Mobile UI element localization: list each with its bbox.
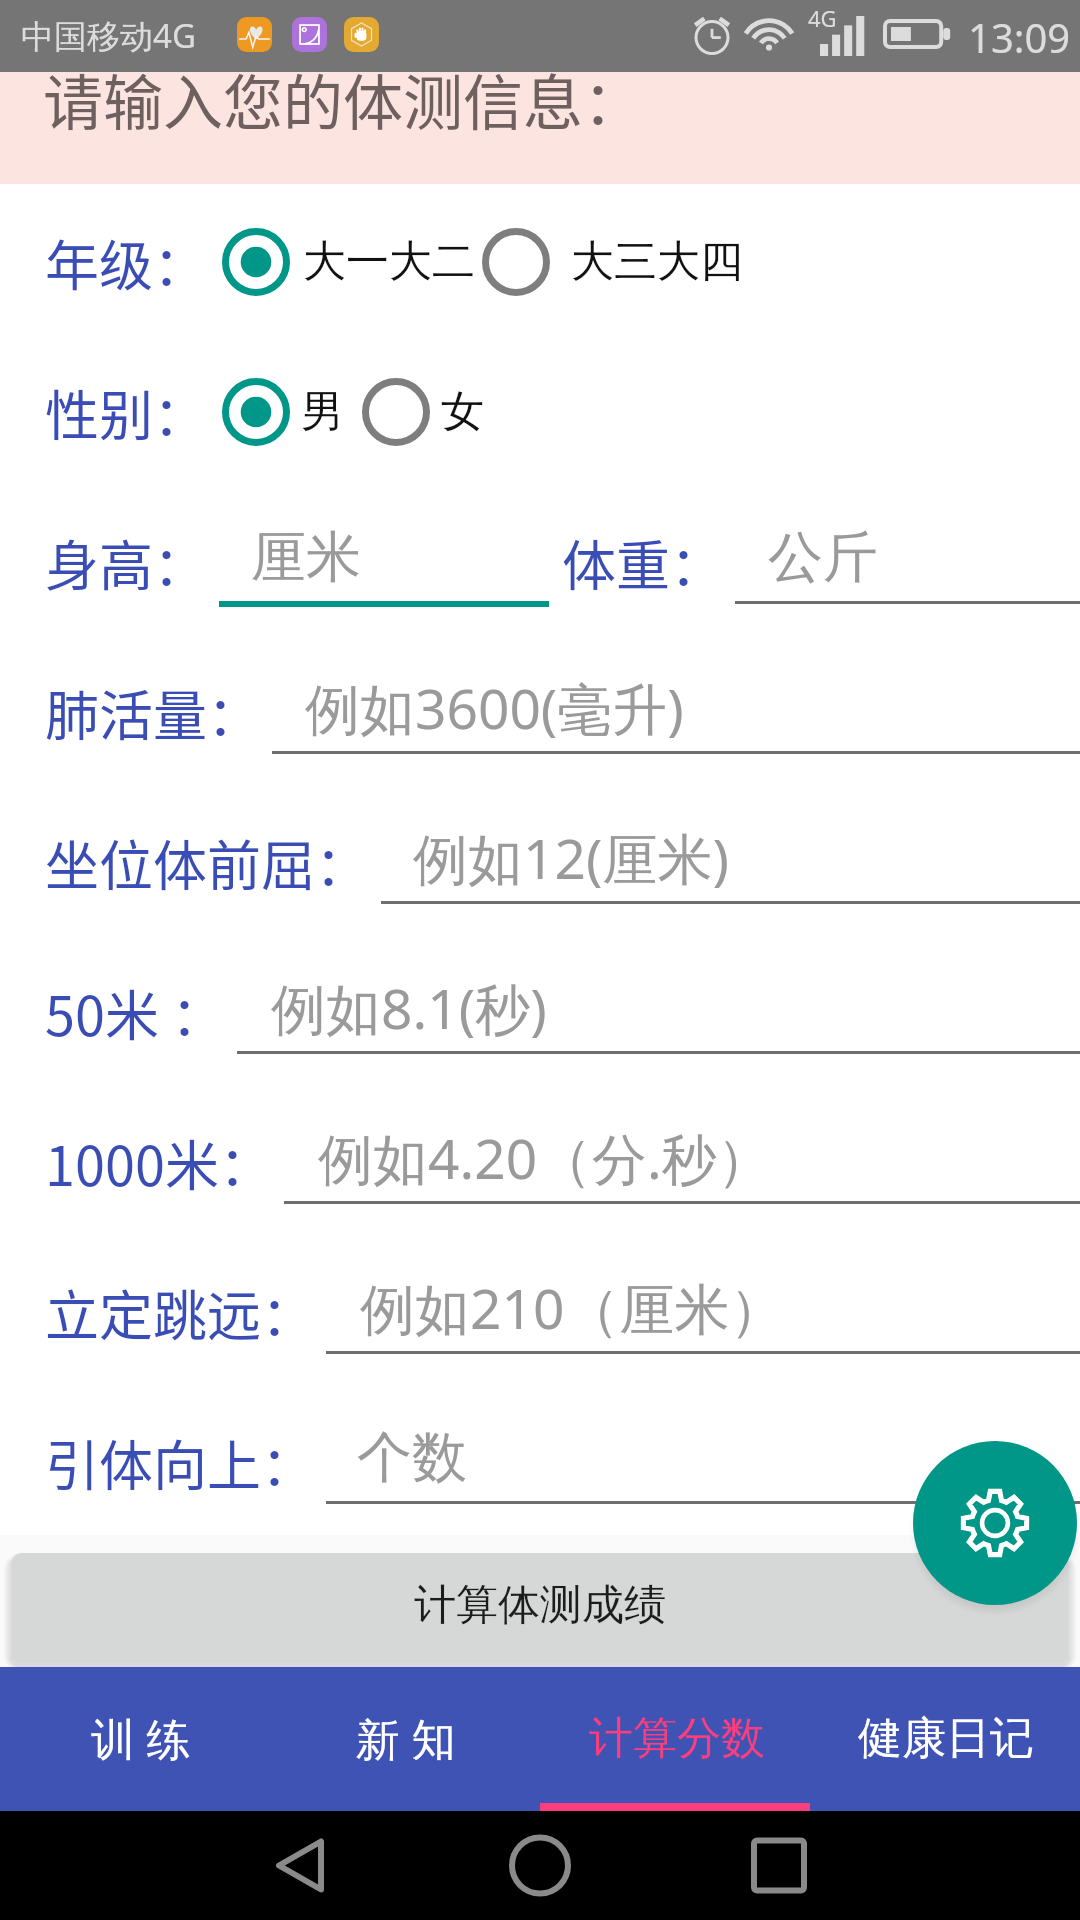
- staticText: 男: [301, 385, 344, 439]
- staticText: 例如8.1(秒): [271, 970, 547, 1045]
- staticText: 例如12(厘米): [413, 820, 729, 895]
- staticText: 1000米：: [45, 1123, 273, 1201]
- button[interactable]: 坐位体前屈：: [0, 787, 1080, 937]
- staticText: 性别：: [45, 373, 207, 451]
- button[interactable]: 大三大四: [482, 187, 751, 337]
- staticText: 个数: [357, 1423, 467, 1492]
- button[interactable]: 50米 ：: [0, 937, 1080, 1087]
- button[interactable]: 引体向上：: [0, 1387, 1080, 1537]
- staticText: 厘米: [251, 523, 361, 592]
- staticText: 女: [441, 385, 484, 439]
- button[interactable]: 女: [362, 337, 621, 487]
- staticText: 50米 ：: [45, 973, 226, 1051]
- button[interactable]: 男: [222, 337, 481, 487]
- staticText: 体重：: [562, 523, 724, 601]
- staticText: 例如3600(毫升): [305, 670, 684, 745]
- button[interactable]: 大一大二: [222, 187, 483, 337]
- staticText: 引体向上：: [45, 1423, 315, 1501]
- button[interactable]: 计算分数: [540, 1667, 810, 1811]
- button[interactable]: 计算体测成绩: [12, 1553, 1068, 1663]
- staticText: 坐位体前屈：: [45, 823, 369, 901]
- staticText: 13:09: [968, 10, 1071, 64]
- staticText: 计算体测成绩: [414, 1579, 666, 1632]
- staticText: 例如4.20（分.秒）: [318, 1120, 772, 1195]
- staticText: 训 练: [91, 1708, 191, 1768]
- staticText: 4G: [808, 3, 837, 33]
- staticText: 中国移动4G: [21, 13, 196, 58]
- button[interactable]: 训 练: [0, 1667, 270, 1811]
- staticText: 大一大二: [303, 235, 475, 289]
- button[interactable]: 肺活量：: [0, 637, 1080, 787]
- staticText: 健康日记: [858, 1711, 1034, 1766]
- staticText: 年级：: [45, 223, 207, 301]
- staticText: 肺活量：: [45, 673, 261, 751]
- staticText: 请输入您的体测信息：: [43, 55, 643, 142]
- button[interactable]: Settings: [913, 1441, 1077, 1605]
- staticText: 例如210（厘米）: [360, 1270, 785, 1345]
- staticText: 大三大四: [571, 235, 743, 289]
- button[interactable]: 新 知: [270, 1667, 540, 1811]
- button[interactable]: 立定跳远：: [0, 1237, 1080, 1387]
- staticText: 身高：: [45, 523, 207, 601]
- button[interactable]: 健康日记: [810, 1667, 1080, 1811]
- staticText: 计算分数: [589, 1711, 765, 1766]
- staticText: 新 知: [356, 1708, 456, 1768]
- staticText: 公斤: [768, 523, 878, 592]
- staticText: 立定跳远：: [45, 1273, 315, 1351]
- button[interactable]: 1000米：: [0, 1087, 1080, 1237]
